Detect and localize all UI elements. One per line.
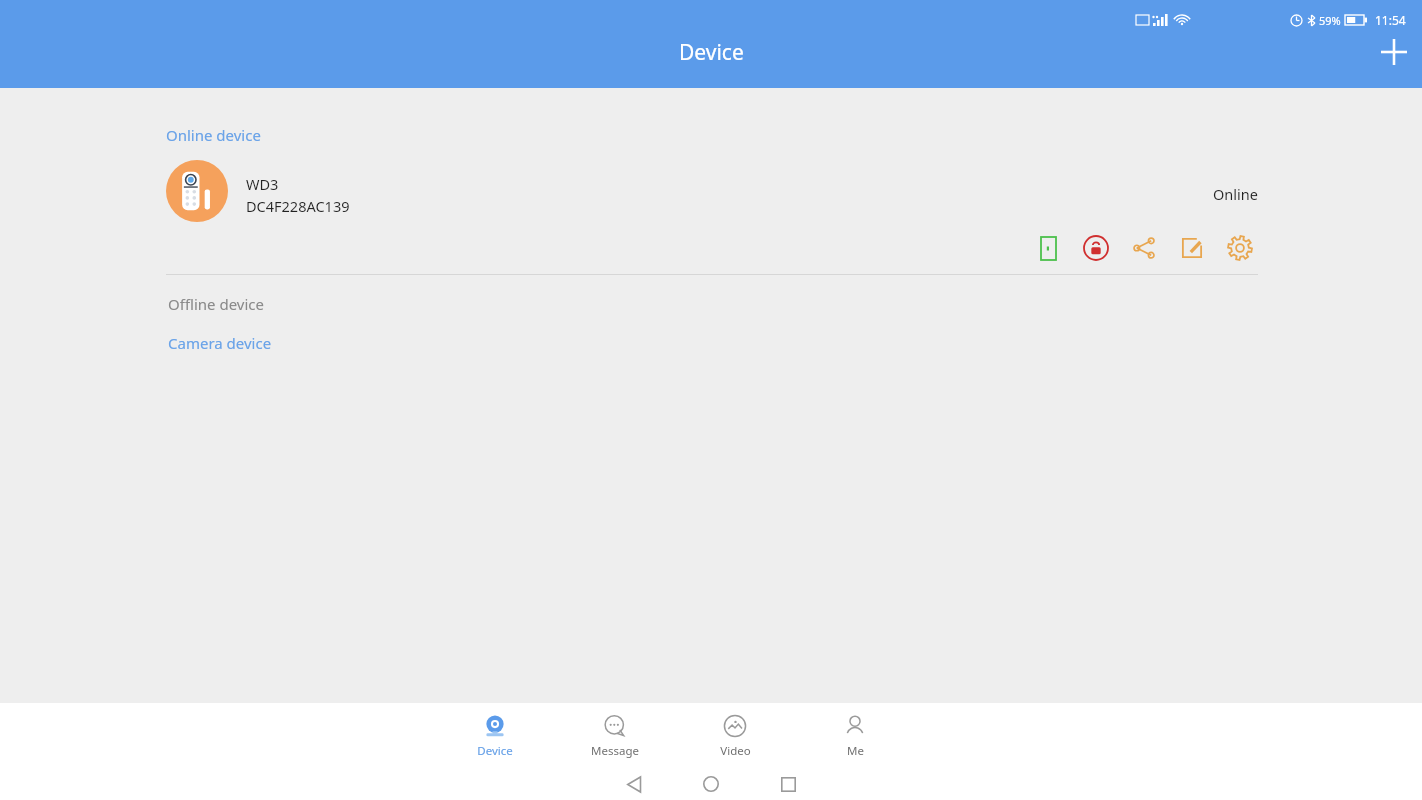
button[interactable]: Share — [1126, 230, 1162, 266]
button[interactable]: Online device — [166, 125, 261, 145]
staticText: WD3 — [246, 174, 279, 194]
button[interactable]: Video — [695, 709, 775, 763]
button[interactable]: Device — [455, 709, 535, 763]
button[interactable]: Back — [612, 768, 656, 800]
button[interactable]: Settings — [1222, 230, 1258, 266]
staticText: Online — [1213, 184, 1258, 204]
button[interactable]: Lock — [1078, 230, 1114, 266]
button[interactable]: Home — [689, 768, 733, 800]
button[interactable]: Door status — [1030, 230, 1066, 266]
staticText: Device — [477, 743, 513, 759]
button[interactable]: Recents — [766, 768, 810, 800]
staticText: Me — [847, 743, 864, 759]
button[interactable]: Camera device — [168, 333, 272, 353]
button[interactable]: Edit — [1174, 230, 1210, 266]
button[interactable]: Offline device — [168, 294, 264, 314]
button[interactable]: WD3 — [0, 160, 1422, 222]
staticText: 59% — [1319, 13, 1341, 28]
button[interactable]: Add device — [1366, 24, 1422, 80]
staticText: DC4F228AC139 — [246, 196, 350, 216]
button[interactable]: Message — [575, 709, 655, 763]
button[interactable]: Me — [815, 709, 895, 763]
staticText: 11:54 — [1375, 12, 1406, 28]
staticText: Device — [679, 38, 744, 67]
staticText: Video — [720, 743, 751, 759]
staticText: Message — [591, 743, 639, 759]
